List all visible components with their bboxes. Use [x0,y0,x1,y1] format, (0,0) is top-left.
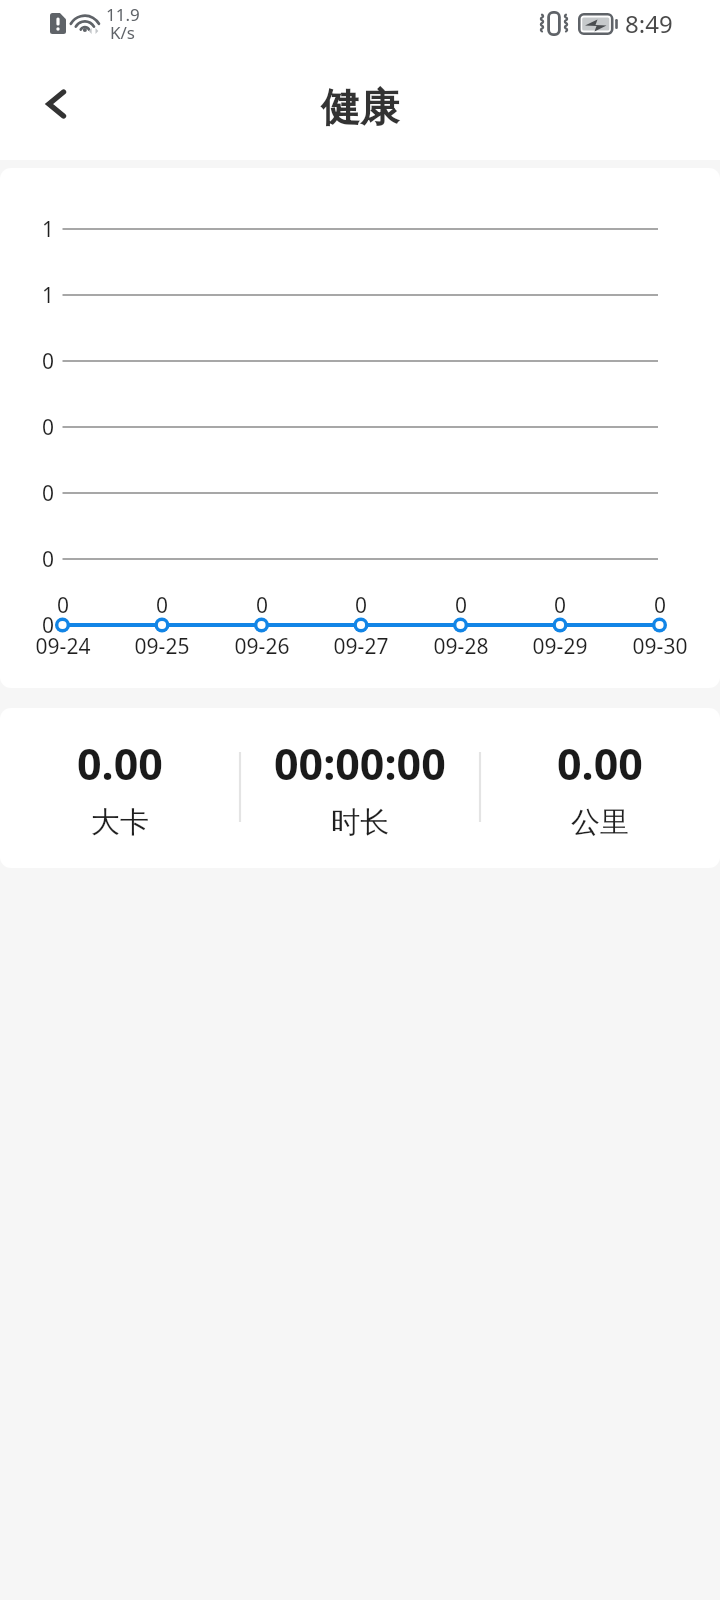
staticText: K/s [110,21,135,44]
button[interactable]: 0.00 [0,708,240,868]
staticText: 09-27 [311,632,411,661]
staticText: 0 [13,591,113,620]
staticText: 0 [311,591,411,620]
staticText: 0.00 [77,734,163,793]
button[interactable]: 00:00:00 [240,708,480,868]
staticText: 0 [0,611,54,640]
staticText: 大卡 [91,804,149,841]
staticText: 0 [0,479,54,508]
staticText: 00:00:00 [274,734,446,793]
staticText: 09-28 [411,632,511,661]
staticText: 0 [0,545,54,574]
button[interactable]: Back [24,79,84,139]
staticText: 0 [411,591,511,620]
staticText: 11.9 [106,3,140,26]
staticText: 0 [510,591,610,620]
staticText: 0 [112,591,212,620]
staticText: 0 [0,347,54,376]
staticText: 0 [0,413,54,442]
staticText: 健康 [321,83,399,132]
staticText: 8:49 [625,7,673,40]
staticText: 公里 [571,804,629,841]
staticText: 1 [0,215,54,244]
staticText: 09-26 [212,632,312,661]
staticText: 1 [0,281,54,310]
staticText: 时长 [331,804,389,841]
staticText: 09-30 [610,632,710,661]
staticText: 0 [610,591,710,620]
staticText: 0.00 [557,734,643,793]
button[interactable]: 0.00 [480,708,720,868]
staticText: 09-25 [112,632,212,661]
staticText: 0 [212,591,312,620]
staticText: 09-24 [13,632,113,661]
staticText: 09-29 [510,632,610,661]
